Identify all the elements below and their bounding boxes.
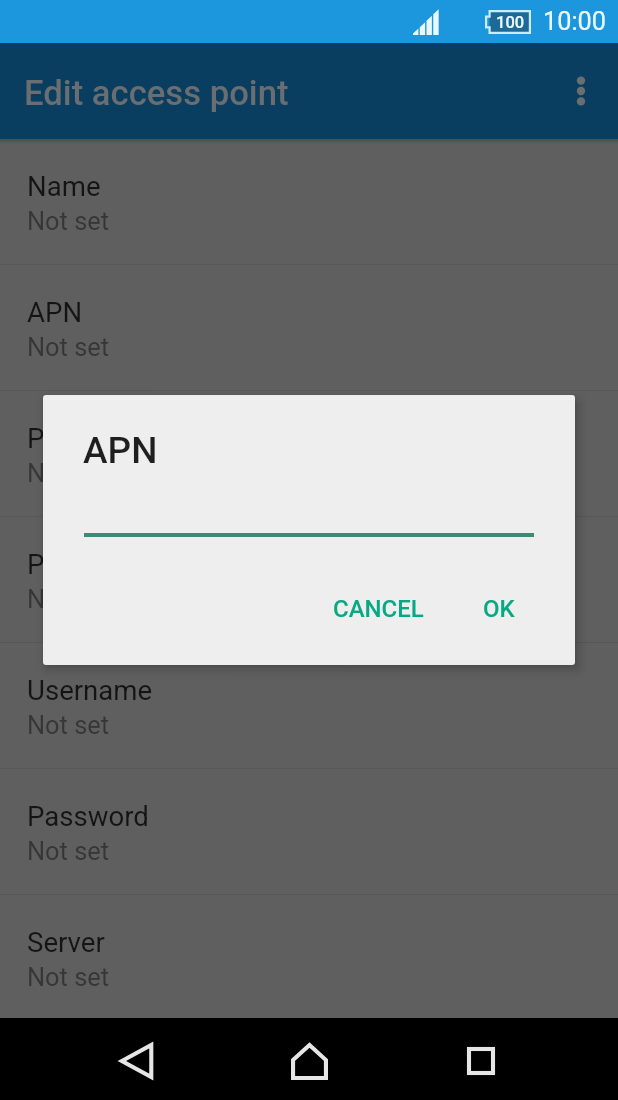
staticText: Not set xyxy=(27,710,110,740)
staticText: Name xyxy=(27,170,101,202)
staticText: Not set xyxy=(27,962,110,992)
staticText: 10:00 xyxy=(543,7,606,37)
button[interactable]: Server xyxy=(0,895,618,1021)
staticText: APN xyxy=(83,429,158,472)
staticText: Not set xyxy=(27,584,110,614)
staticText: Port xyxy=(27,548,80,580)
button[interactable]: Home xyxy=(271,1023,347,1099)
staticText: Edit access point xyxy=(24,73,289,114)
staticText: Username xyxy=(27,674,153,706)
staticText: OK xyxy=(483,595,515,623)
button[interactable]: APN xyxy=(0,265,618,391)
staticText: Not set xyxy=(27,458,110,488)
button[interactable]: Name xyxy=(0,139,618,265)
button[interactable]: CANCEL xyxy=(319,583,438,635)
staticText: 100 xyxy=(496,13,525,32)
staticText: CANCEL xyxy=(333,595,424,623)
staticText: APN xyxy=(27,296,83,328)
staticText: Not set xyxy=(27,332,110,362)
button[interactable]: Proxy xyxy=(0,391,618,517)
staticText: Not set xyxy=(27,206,110,236)
staticText: Server xyxy=(27,926,105,958)
button[interactable]: Back xyxy=(99,1023,175,1099)
staticText: Proxy xyxy=(27,422,96,454)
staticText: Password xyxy=(27,800,149,832)
button[interactable]: Password xyxy=(0,769,618,895)
button[interactable]: OK xyxy=(469,583,529,635)
staticText: Not set xyxy=(27,836,110,866)
button[interactable]: Recent apps xyxy=(443,1023,519,1099)
button[interactable]: More options xyxy=(542,43,618,139)
button[interactable]: Username xyxy=(0,643,618,769)
button[interactable]: Port xyxy=(0,517,618,643)
